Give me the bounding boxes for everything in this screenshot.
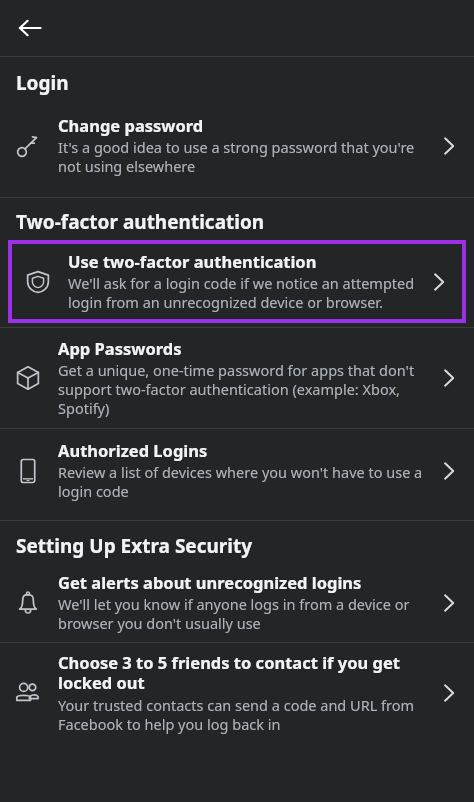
staticText: Choose 3 to 5 friends to contact if you … [58,651,432,694]
staticText: We'll let you know if anyone logs in fro… [58,594,432,634]
button[interactable]: Change password [0,103,474,188]
staticText: Two-factor authentication [16,209,265,235]
button[interactable]: Back [8,6,52,50]
staticText: Change password [58,114,204,136]
button[interactable]: Use two-factor authentication [10,242,464,321]
staticText: We'll ask for a login code if we notice … [68,273,422,313]
button[interactable]: Choose 3 to 5 friends to contact if you … [0,643,474,743]
staticText: Authorized Logins [58,439,208,461]
staticText: Get a unique, one-time password for apps… [58,360,432,419]
staticText: Review a list of devices where you won't… [58,462,432,502]
staticText: App Passwords [58,337,182,359]
staticText: Use two-factor authentication [68,250,317,272]
staticText: Setting Up Extra Security [16,533,253,559]
button[interactable]: Get alerts about unrecognized logins [0,563,474,642]
button[interactable]: Authorized Logins [0,429,474,512]
staticText: Get alerts about unrecognized logins [58,571,362,593]
staticText: It's a good idea to use a strong passwor… [58,137,432,177]
staticText: Your trusted contacts can send a code an… [58,695,432,735]
button[interactable]: App Passwords [0,328,474,428]
staticText: Login [16,70,69,96]
